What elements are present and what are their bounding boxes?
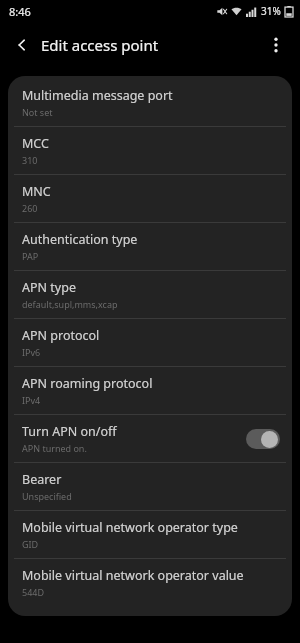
button[interactable]: MCC: [8, 127, 292, 174]
staticText: Turn APN on/off: [22, 423, 117, 440]
button[interactable]: Turn APN on or off: [246, 429, 280, 449]
button[interactable]: Turn APN on/off: [8, 415, 292, 462]
staticText: Not set: [22, 106, 53, 118]
staticText: 31%: [261, 4, 281, 18]
staticText: PAP: [22, 250, 39, 262]
staticText: GID: [22, 538, 39, 550]
staticText: 8:46: [9, 4, 31, 19]
button[interactable]: Mobile virtual network operator value: [8, 559, 292, 606]
staticText: Unspecified: [22, 490, 72, 502]
button[interactable]: Multimedia message port: [8, 76, 292, 126]
staticText: 260: [22, 202, 38, 214]
staticText: 310: [22, 154, 38, 166]
button[interactable]: APN roaming protocol: [8, 367, 292, 414]
button[interactable]: More options: [262, 31, 290, 59]
staticText: Mobile virtual network operator type: [22, 519, 238, 536]
button[interactable]: Authentication type: [8, 223, 292, 270]
staticText: Bearer: [22, 471, 62, 488]
staticText: APN type: [22, 279, 76, 296]
staticText: MCC: [22, 135, 49, 152]
staticText: APN turned on.: [22, 442, 87, 454]
staticText: IPv4: [22, 394, 41, 406]
staticText: Multimedia message port: [22, 87, 173, 104]
button[interactable]: APN protocol: [8, 319, 292, 366]
staticText: default,supl,mms,xcap: [22, 298, 118, 310]
button[interactable]: Back: [8, 31, 36, 59]
staticText: Mobile virtual network operator value: [22, 567, 244, 584]
button[interactable]: APN type: [8, 271, 292, 318]
button[interactable]: MNC: [8, 175, 292, 222]
staticText: Authentication type: [22, 231, 138, 248]
staticText: APN protocol: [22, 327, 100, 344]
staticText: Edit access point: [41, 35, 159, 55]
button[interactable]: Bearer: [8, 463, 292, 510]
staticText: APN roaming protocol: [22, 375, 153, 392]
button[interactable]: Mobile virtual network operator type: [8, 511, 292, 558]
staticText: 544D: [22, 586, 45, 598]
staticText: MNC: [22, 183, 51, 200]
staticText: IPv6: [22, 346, 41, 358]
